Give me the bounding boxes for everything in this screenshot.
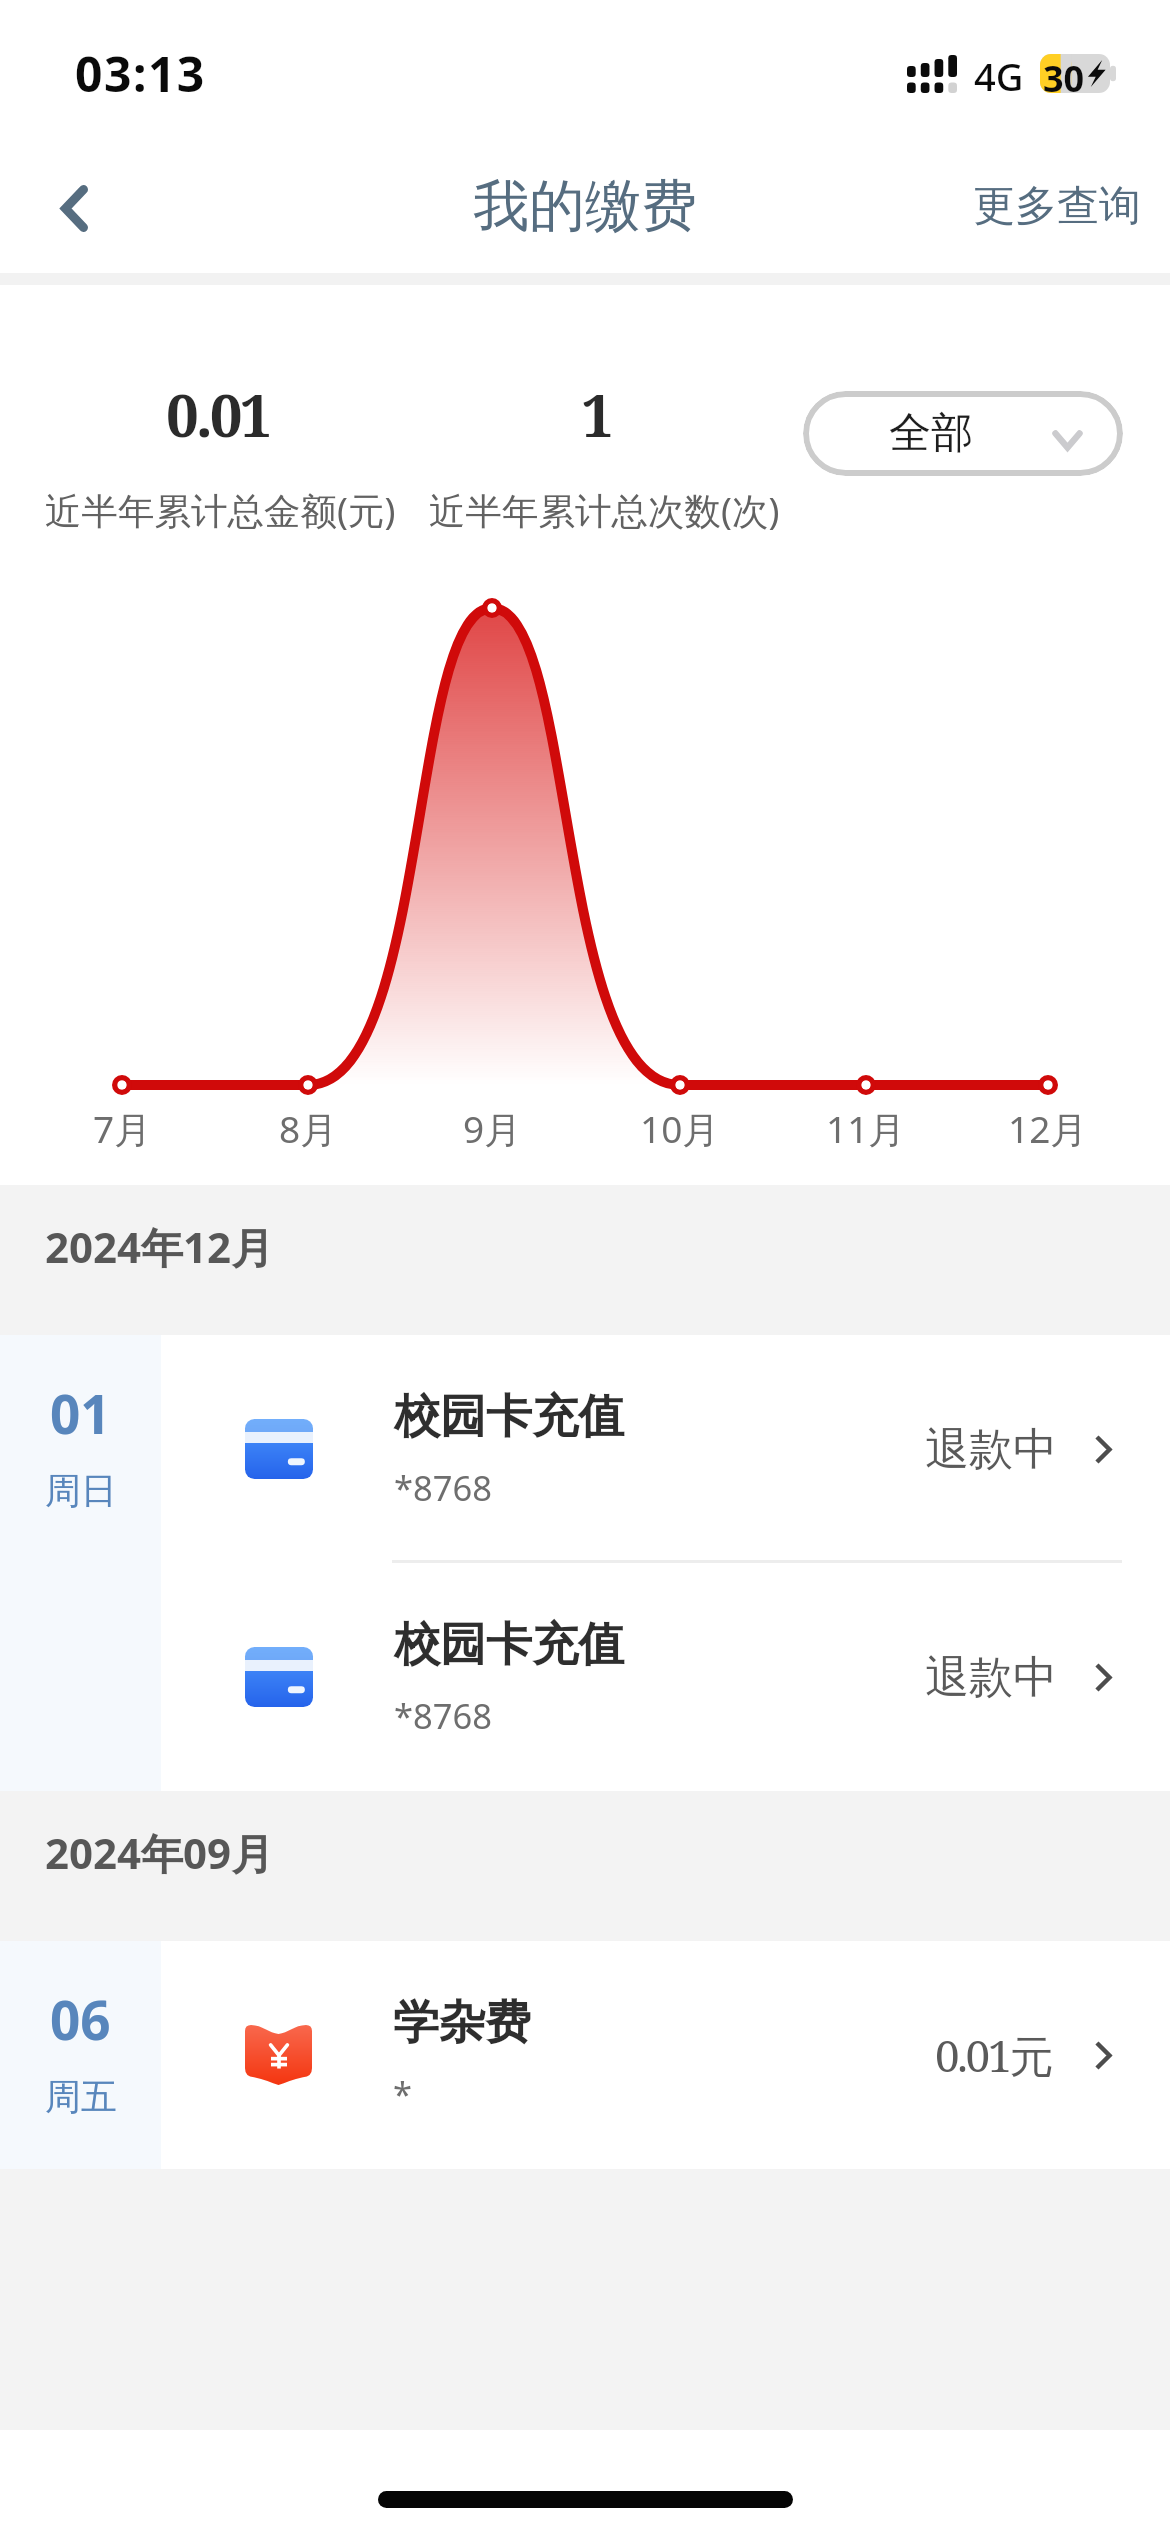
staticText: 2024年12月 [45,1218,274,1275]
staticText: 近半年累计总次数(次) [429,485,780,535]
button[interactable]: 学杂费 [161,1941,1170,2169]
staticText: 7月 [93,1103,152,1154]
button[interactable]: 校园卡充值 [161,1335,1170,1563]
staticText: 校园卡充值 [394,1616,624,1674]
staticText: 30 [1043,54,1085,93]
staticText: 01 [50,1377,111,1449]
staticText: 学杂费 [393,1994,531,2052]
staticText: *8768 [394,1692,492,1739]
staticText: 退款中 [925,1422,1057,1477]
staticText: * [393,2070,413,2117]
staticText: 1 [581,375,614,454]
staticText: 退款中 [925,1650,1057,1705]
staticText: 03:13 [75,41,206,106]
staticText: 10月 [640,1103,720,1154]
staticText: 2024年09月 [45,1824,274,1881]
button[interactable]: Back [0,140,145,273]
staticText: *8768 [394,1464,492,1511]
staticText: 0.01元 [935,2025,1051,2085]
button[interactable]: 全部 [803,391,1123,476]
button[interactable]: 校园卡充值 [161,1563,1170,1791]
staticText: 全部 [889,407,973,460]
staticText: 周五 [45,2074,117,2119]
staticText: 更多查询 [973,180,1141,233]
staticText: 校园卡充值 [394,1388,624,1446]
staticText: 4G [974,50,1024,102]
staticText: 06 [50,1983,111,2055]
button[interactable]: 更多查询 [939,140,1170,273]
staticText: 12月 [1008,1103,1088,1154]
staticText: 近半年累计总金额(元) [45,485,396,535]
staticText: 0.01 [166,375,270,454]
staticText: 11月 [826,1103,906,1154]
staticText: 8月 [279,1103,338,1154]
staticText: 9月 [463,1103,522,1154]
staticText: 我的缴费 [473,171,697,242]
staticText: 周日 [45,1468,117,1513]
